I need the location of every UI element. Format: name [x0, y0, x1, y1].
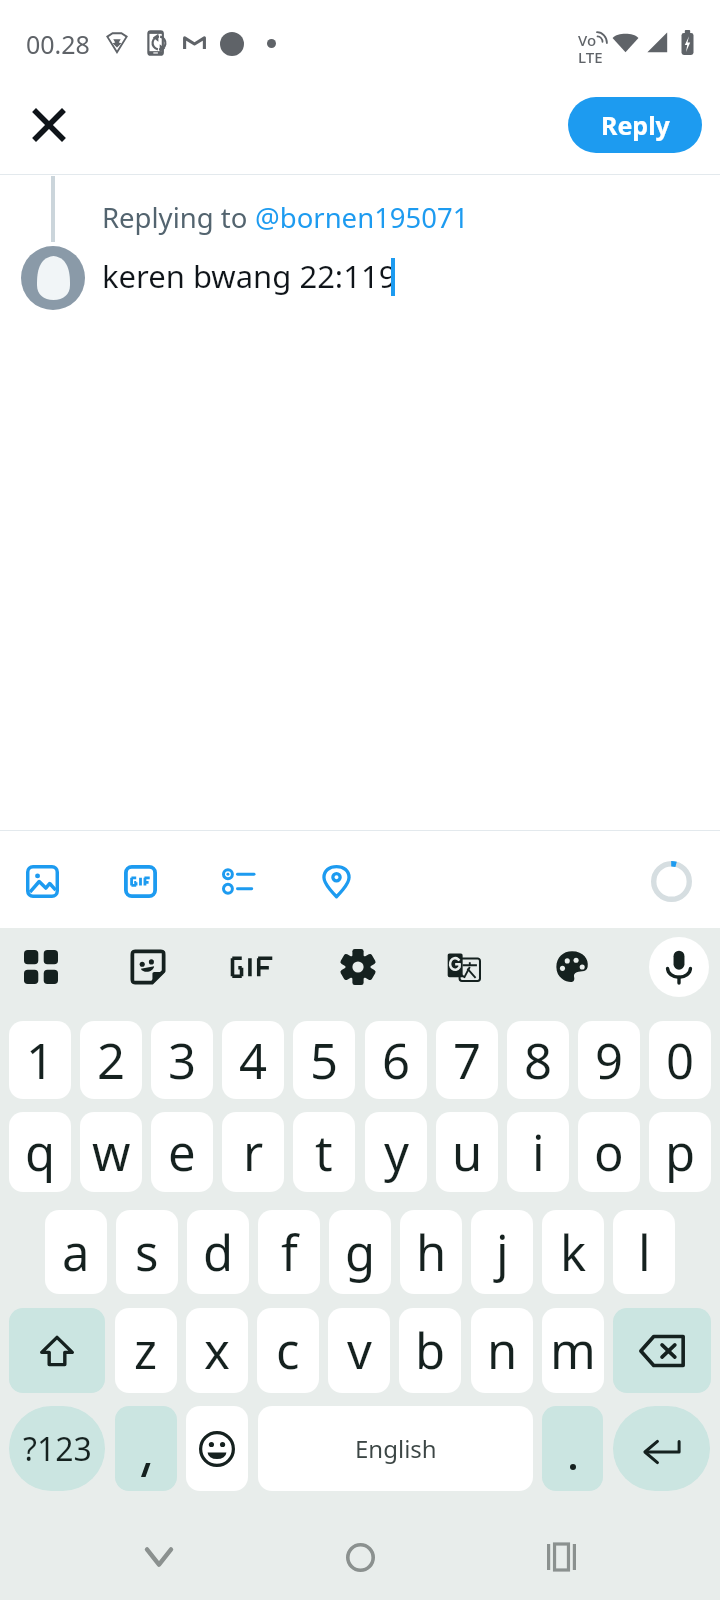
button[interactable]: Character count	[647, 857, 695, 905]
staticText: Vo	[578, 30, 597, 50]
button[interactable]: i	[507, 1112, 569, 1192]
button[interactable]: Close	[21, 97, 77, 153]
staticText: a	[62, 1219, 90, 1286]
button[interactable]: Reply	[568, 97, 702, 153]
button[interactable]: g	[329, 1210, 391, 1294]
staticText: Reply	[601, 108, 670, 142]
button[interactable]	[542, 1406, 603, 1491]
staticText: English	[355, 1432, 437, 1465]
button[interactable]: b	[399, 1308, 461, 1393]
button[interactable]: k	[542, 1210, 604, 1294]
button[interactable]: o	[578, 1112, 640, 1192]
button[interactable]: Add poll	[212, 855, 264, 907]
button[interactable]: u	[436, 1112, 498, 1192]
staticText: t	[315, 1119, 333, 1186]
staticText: n	[487, 1317, 518, 1384]
button[interactable]: Translate	[436, 939, 492, 995]
button[interactable]: Backspace	[613, 1308, 711, 1393]
button[interactable]: Apps	[13, 939, 69, 995]
staticText: 5	[310, 1027, 339, 1094]
staticText: 00.28	[26, 27, 90, 61]
button[interactable]: Voice input	[649, 937, 709, 997]
staticText: d	[203, 1219, 234, 1286]
staticText: x	[204, 1317, 230, 1384]
staticText: u	[452, 1119, 483, 1186]
button[interactable]: Emoji	[186, 1406, 248, 1491]
button[interactable]: Enter	[613, 1406, 710, 1491]
button[interactable]: 1	[9, 1021, 71, 1099]
button[interactable]: c	[257, 1308, 319, 1393]
button[interactable]: v	[328, 1308, 390, 1393]
button[interactable]: j	[471, 1210, 533, 1294]
staticText: ?123	[23, 1427, 92, 1471]
staticText: 9	[595, 1027, 624, 1094]
button[interactable]: GIF	[224, 939, 280, 995]
button[interactable]: Stickers	[120, 939, 176, 995]
staticText: LTE	[578, 47, 603, 67]
button[interactable]: s	[116, 1210, 178, 1294]
staticText: e	[168, 1119, 196, 1186]
button[interactable]: a	[45, 1210, 107, 1294]
button[interactable]: e	[151, 1112, 213, 1192]
staticText: c	[276, 1317, 300, 1384]
staticText: 8	[524, 1027, 553, 1094]
button[interactable]: Add GIF	[114, 855, 166, 907]
staticText: i	[532, 1119, 545, 1186]
button[interactable]: Shift	[9, 1308, 105, 1393]
button[interactable]: r	[222, 1112, 284, 1192]
staticText: p	[665, 1119, 696, 1186]
button[interactable]: Add photo	[16, 855, 68, 907]
staticText: 4	[239, 1027, 268, 1094]
button[interactable]: Settings	[330, 939, 386, 995]
staticText: 7	[453, 1027, 482, 1094]
staticText: @bornen195071	[255, 199, 469, 236]
staticText: s	[135, 1219, 159, 1286]
staticText: g	[345, 1219, 376, 1286]
button[interactable]: Add location	[310, 855, 362, 907]
button[interactable]: t	[293, 1112, 355, 1192]
button[interactable]: 2	[80, 1021, 142, 1099]
button[interactable]: y	[365, 1112, 427, 1192]
staticText: f	[281, 1219, 298, 1286]
staticText: z	[134, 1317, 158, 1384]
button[interactable]: Hide keyboard	[127, 1525, 191, 1589]
staticText: Replying to	[102, 199, 255, 236]
staticText: k	[560, 1219, 587, 1286]
button[interactable]: 3	[151, 1021, 213, 1099]
button[interactable]: 7	[436, 1021, 498, 1099]
button[interactable]: English	[258, 1406, 533, 1491]
staticText: o	[594, 1119, 624, 1186]
button[interactable]: 4	[222, 1021, 284, 1099]
staticText: 6	[382, 1027, 411, 1094]
staticText: r	[243, 1119, 264, 1186]
button[interactable]: x	[186, 1308, 248, 1393]
button[interactable]: Home	[328, 1525, 392, 1589]
button[interactable]: Themes	[544, 939, 600, 995]
staticText: m	[550, 1317, 596, 1384]
button[interactable]: 6	[365, 1021, 427, 1099]
staticText: 1	[26, 1027, 55, 1094]
staticText: 0	[666, 1027, 695, 1094]
button[interactable]: d	[187, 1210, 249, 1294]
button[interactable]: h	[400, 1210, 462, 1294]
button[interactable]: 8	[507, 1021, 569, 1099]
button[interactable]	[115, 1406, 177, 1491]
button[interactable]: f	[258, 1210, 320, 1294]
button[interactable]: l	[613, 1210, 675, 1294]
button[interactable]: 5	[293, 1021, 355, 1099]
button[interactable]: ?123	[9, 1406, 105, 1491]
button[interactable]: z	[115, 1308, 177, 1393]
staticText: j	[496, 1219, 509, 1286]
staticText: v	[347, 1317, 372, 1384]
button[interactable]: 9	[578, 1021, 640, 1099]
staticText: y	[384, 1119, 409, 1186]
staticText: 2	[97, 1027, 126, 1094]
button[interactable]: m	[542, 1308, 604, 1393]
button[interactable]: Recent apps	[529, 1525, 593, 1589]
staticText: 3	[168, 1027, 197, 1094]
button[interactable]: n	[471, 1308, 533, 1393]
button[interactable]: 0	[649, 1021, 711, 1099]
button[interactable]: p	[649, 1112, 711, 1192]
button[interactable]: q	[9, 1112, 71, 1192]
button[interactable]: w	[80, 1112, 142, 1192]
